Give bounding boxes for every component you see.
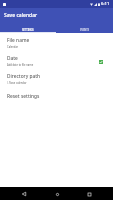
staticText: Save calendar	[4, 12, 38, 19]
button[interactable]: EVENTS	[56, 23, 113, 33]
staticText: Reset settings	[7, 93, 40, 100]
button[interactable]: Back	[18, 188, 30, 200]
staticText: SETTINGS	[22, 28, 34, 31]
button[interactable]: Home	[51, 188, 63, 200]
staticText: Add date to file name	[7, 63, 34, 67]
staticText: Directory path	[7, 73, 40, 80]
button[interactable]: SETTINGS	[0, 23, 56, 33]
staticText: 6:11	[101, 1, 110, 7]
staticText: File name	[7, 37, 30, 44]
button[interactable]: Add date to file name checkbox	[96, 57, 105, 66]
button[interactable]: Reset settings	[0, 88, 113, 104]
staticText: Calendar	[7, 45, 18, 49]
staticText: / /Save calendar	[7, 81, 27, 85]
staticText: Date	[7, 55, 18, 62]
button[interactable]: Date	[0, 52, 113, 70]
button[interactable]: Directory path	[0, 70, 113, 88]
staticText: EVENTS	[80, 28, 90, 31]
button[interactable]: Recent apps	[83, 188, 95, 200]
button[interactable]: File name	[0, 34, 113, 52]
